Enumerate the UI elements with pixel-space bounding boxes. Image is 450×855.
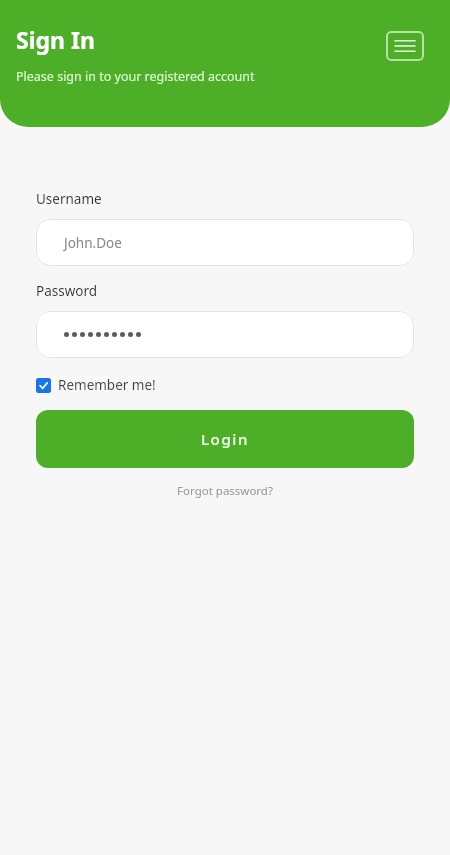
staticText: Forgot password? <box>177 483 273 499</box>
staticText: Remember me! <box>58 376 156 394</box>
staticText: Login <box>201 429 249 449</box>
button[interactable]: Forgot password? <box>171 480 279 502</box>
staticText: Please sign in to your registered accoun… <box>16 68 255 85</box>
button[interactable]: Remember me! <box>36 374 156 396</box>
staticText: Sign In <box>16 24 95 55</box>
button[interactable]: Login <box>36 410 414 468</box>
staticText: John.Doe <box>64 234 122 252</box>
button[interactable]: John.Doe <box>36 219 414 266</box>
button[interactable] <box>36 311 414 358</box>
staticText: Password <box>36 282 98 300</box>
staticText: Username <box>36 190 102 208</box>
button[interactable]: Menu <box>386 31 424 61</box>
